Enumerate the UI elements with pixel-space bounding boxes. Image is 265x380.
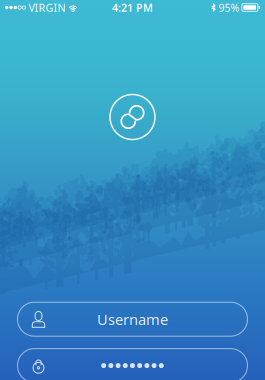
button[interactable]: Username <box>17 302 247 336</box>
staticText: 95% <box>218 0 239 15</box>
button[interactable] <box>17 349 247 380</box>
staticText: VIRGIN <box>29 0 66 15</box>
staticText: Username <box>97 309 168 329</box>
staticText: 4:21 PM <box>112 0 153 15</box>
